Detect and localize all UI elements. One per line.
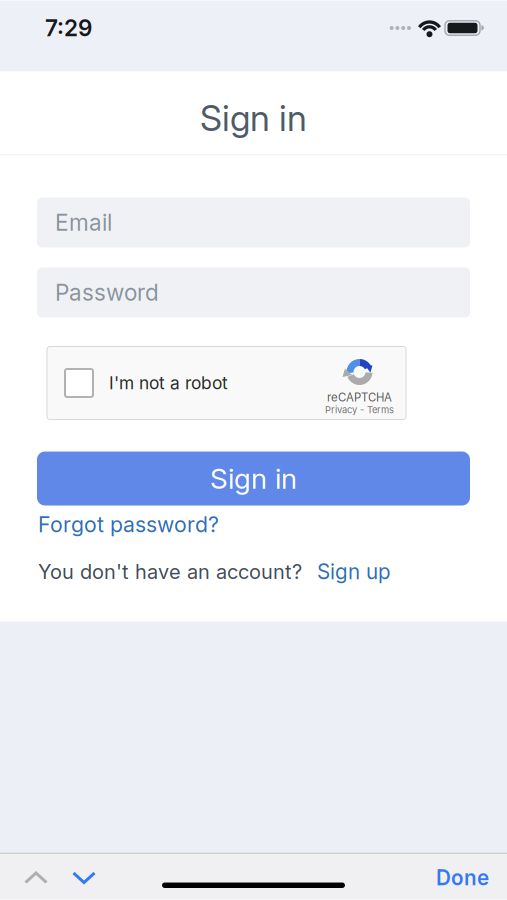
button[interactable]: Email	[37, 197, 470, 247]
button[interactable]: I'm not a robot	[65, 369, 93, 397]
staticText: Sign up	[317, 559, 391, 584]
button[interactable]: Previous field	[24, 871, 48, 884]
staticText: Sign in	[200, 97, 307, 139]
staticText: reCAPTCHA	[327, 390, 392, 404]
button[interactable]: Password	[37, 267, 470, 317]
button[interactable]: Sign in	[37, 451, 470, 505]
button[interactable]: Sign up	[317, 559, 391, 584]
button[interactable]: Done	[436, 865, 489, 890]
staticText: 7:29	[45, 14, 92, 42]
staticText: Done	[436, 865, 489, 890]
staticText: Privacy - Terms	[325, 404, 394, 415]
staticText: Email	[55, 209, 112, 236]
button[interactable]: Next field	[72, 871, 96, 884]
staticText: Password	[55, 279, 159, 306]
button[interactable]: Forgot password?	[38, 511, 219, 537]
staticText: Sign in	[210, 462, 297, 495]
staticText: Forgot password?	[38, 511, 219, 537]
staticText: I'm not a robot	[109, 372, 228, 393]
staticText: You don't have an account?	[38, 560, 302, 584]
